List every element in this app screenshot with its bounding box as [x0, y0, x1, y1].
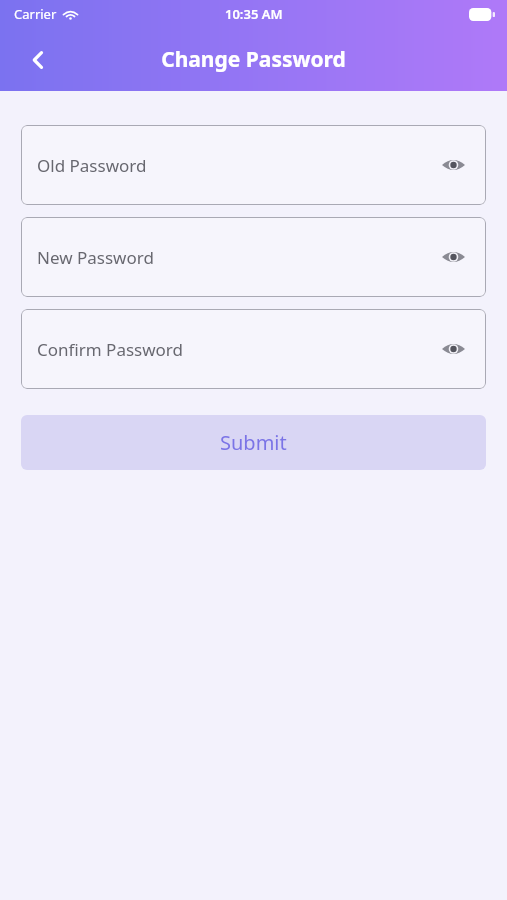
- staticText: New Password: [37, 246, 438, 269]
- staticText: Submit: [220, 429, 287, 456]
- staticText: Old Password: [37, 154, 438, 177]
- button[interactable]: Old Password: [21, 125, 486, 205]
- button[interactable]: Confirm Password: [21, 309, 486, 389]
- staticText: Carrier: [14, 5, 57, 23]
- button[interactable]: Show password: [438, 334, 468, 364]
- button[interactable]: Show password: [438, 150, 468, 180]
- button[interactable]: New Password: [21, 217, 486, 297]
- staticText: Confirm Password: [37, 338, 438, 361]
- button[interactable]: Show password: [438, 242, 468, 272]
- button[interactable]: Back: [18, 40, 58, 80]
- staticText: 10:35 AM: [225, 5, 283, 23]
- staticText: Change Password: [161, 45, 346, 74]
- button[interactable]: Submit: [21, 415, 486, 470]
